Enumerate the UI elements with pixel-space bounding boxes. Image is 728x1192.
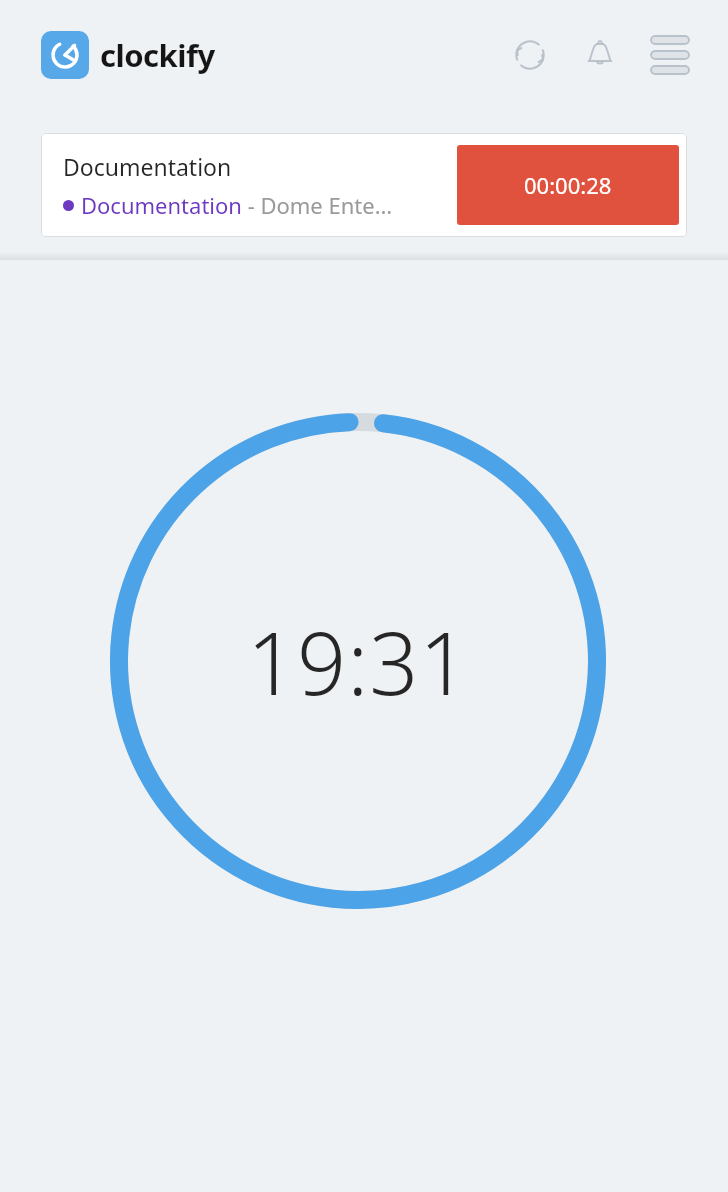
staticText: 00:00:28 [524, 170, 612, 200]
button[interactable]: clockify [41, 31, 215, 79]
staticText: 19:31 [247, 603, 470, 720]
staticText: Documentation [63, 151, 232, 182]
button[interactable]: Notifications [572, 27, 628, 83]
staticText: clockify [100, 34, 215, 76]
button[interactable]: 00:00:28 [457, 145, 679, 225]
button[interactable]: Sync [502, 27, 558, 83]
button[interactable]: 19:31 [110, 413, 606, 909]
staticText: Documentation - Dome Ente… [81, 190, 393, 220]
button[interactable]: Menu [642, 27, 698, 83]
button[interactable]: Documentation [41, 133, 687, 237]
